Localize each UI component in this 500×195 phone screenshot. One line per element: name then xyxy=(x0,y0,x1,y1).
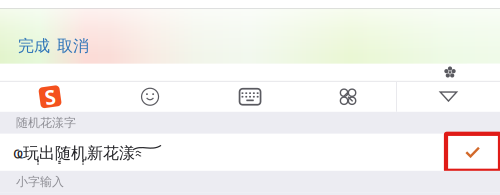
staticText: 小字输入 xyxy=(16,174,64,189)
button[interactable]: Confirm xyxy=(446,134,500,171)
button[interactable]: 取消 xyxy=(50,36,89,56)
staticText: 取消 xyxy=(57,36,89,56)
button[interactable]: Sogou xyxy=(0,82,100,112)
button[interactable]: 完成 xyxy=(18,36,50,56)
staticText: ҩ玩出随机新花漾 xyxy=(13,142,135,163)
staticText: 随机花漾字 xyxy=(16,115,76,130)
button[interactable]: Keyboard xyxy=(200,82,300,112)
button[interactable]: Flower effects xyxy=(433,64,467,81)
button[interactable]: Effects xyxy=(300,82,396,112)
button[interactable]: Emoji xyxy=(100,82,200,112)
staticText: S xyxy=(45,83,56,110)
staticText: 完成 xyxy=(18,36,50,56)
button[interactable]: Hide keyboard xyxy=(397,82,500,112)
